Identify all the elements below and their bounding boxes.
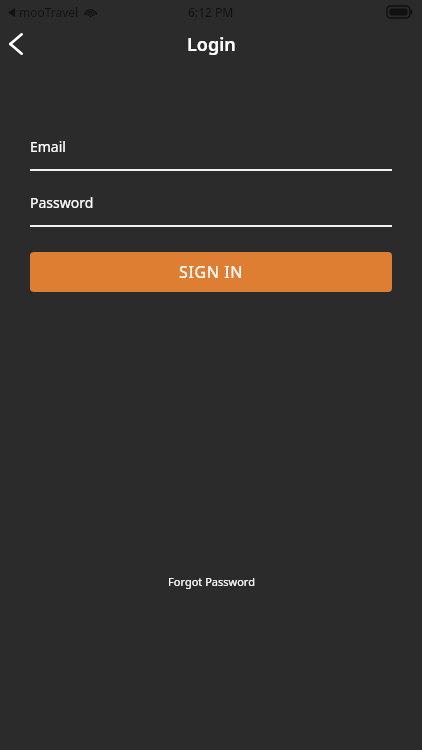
button[interactable]: Email <box>30 137 392 171</box>
button[interactable]: SIGN IN <box>30 252 392 292</box>
button[interactable]: Forgot Password <box>0 574 422 589</box>
button[interactable]: Back <box>0 24 44 64</box>
staticText: Forgot Password <box>168 574 255 589</box>
staticText: Password <box>30 193 94 212</box>
staticText: Email <box>30 137 66 156</box>
staticText: 6:12 PM <box>188 4 234 20</box>
button[interactable]: Password <box>30 193 392 227</box>
staticText: Login <box>187 32 236 57</box>
staticText: SIGN IN <box>179 261 243 283</box>
staticText: mooTravel <box>19 4 79 20</box>
